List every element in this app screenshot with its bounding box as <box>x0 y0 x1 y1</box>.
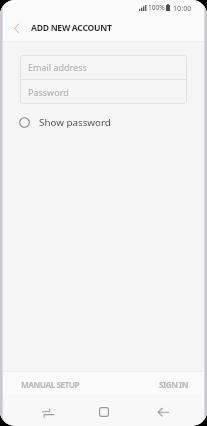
staticText: Password <box>28 86 69 98</box>
button[interactable]: Email address <box>20 55 187 79</box>
button[interactable]: SIGN IN <box>103 372 207 394</box>
button[interactable]: Navigate up <box>3 15 29 41</box>
button[interactable]: Back <box>149 398 177 426</box>
button[interactable]: Home <box>90 398 118 426</box>
staticText: MANUAL SETUP <box>21 379 80 390</box>
staticText: 10:00 <box>173 3 192 13</box>
staticText: Show password <box>39 116 111 129</box>
staticText: SIGN IN <box>159 379 189 390</box>
button[interactable]: Password <box>20 80 187 104</box>
staticText: ADD NEW ACCOUNT <box>31 22 112 34</box>
staticText: 100% <box>148 3 165 12</box>
button[interactable]: Show password <box>19 113 111 131</box>
staticText: Email address <box>28 61 87 73</box>
button[interactable]: Recent apps <box>34 399 62 426</box>
button[interactable]: MANUAL SETUP <box>0 372 103 394</box>
